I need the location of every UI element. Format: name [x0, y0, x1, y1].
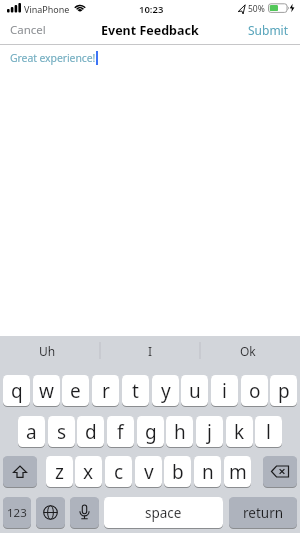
staticText: VinaPhone — [24, 3, 70, 15]
staticText: g — [145, 419, 157, 445]
button[interactable]: r — [92, 375, 119, 407]
button[interactable]: i — [211, 375, 238, 407]
staticText: z — [55, 459, 64, 485]
button[interactable]: Submit — [248, 22, 289, 38]
staticText: c — [114, 459, 124, 485]
button[interactable]: t — [122, 375, 149, 407]
staticText: k — [234, 419, 245, 445]
staticText: Great experience! — [10, 51, 96, 65]
staticText: Uh — [39, 343, 56, 359]
button[interactable]: 123 — [3, 497, 31, 529]
button[interactable]: m — [224, 456, 251, 488]
button[interactable]: f — [107, 416, 134, 448]
button[interactable]: p — [270, 375, 297, 407]
staticText: e — [70, 378, 81, 404]
staticText: Ok — [240, 343, 256, 359]
button[interactable]: g — [137, 416, 164, 448]
button[interactable]: Ok — [218, 342, 278, 360]
button[interactable]: k — [226, 416, 253, 448]
staticText: x — [83, 459, 94, 485]
staticText: q — [11, 378, 23, 404]
staticText: space — [145, 504, 182, 522]
button[interactable] — [263, 456, 297, 488]
button[interactable]: y — [152, 375, 179, 407]
staticText: 123 — [7, 505, 27, 521]
button[interactable]: o — [241, 375, 268, 407]
button[interactable]: Cancel — [10, 22, 46, 38]
staticText: f — [117, 419, 124, 445]
staticText: n — [202, 459, 214, 485]
staticText: t — [132, 378, 139, 404]
button[interactable]: l — [255, 416, 282, 448]
staticText: j — [207, 419, 212, 445]
staticText: b — [172, 459, 184, 485]
button[interactable]: v — [135, 456, 162, 488]
staticText: m — [229, 459, 247, 485]
staticText: return — [243, 504, 284, 522]
button[interactable]: d — [77, 416, 104, 448]
staticText: s — [57, 419, 67, 445]
staticText: h — [174, 419, 186, 445]
button[interactable]: I — [120, 342, 180, 360]
staticText: I — [148, 343, 153, 359]
button[interactable]: s — [48, 416, 75, 448]
button[interactable]: j — [196, 416, 223, 448]
button[interactable]: x — [75, 456, 102, 488]
button[interactable]: h — [166, 416, 193, 448]
staticText: Event Feedback — [101, 22, 199, 39]
staticText: y — [161, 378, 171, 404]
staticText: u — [189, 378, 201, 404]
button[interactable] — [70, 497, 99, 529]
staticText: d — [85, 419, 97, 445]
staticText: l — [266, 419, 271, 445]
button[interactable]: n — [194, 456, 221, 488]
staticText: a — [26, 419, 37, 445]
button[interactable]: c — [105, 456, 132, 488]
button[interactable] — [36, 497, 65, 529]
button[interactable]: b — [164, 456, 191, 488]
staticText: 10:23 — [139, 3, 164, 16]
button[interactable] — [3, 456, 37, 488]
staticText: p — [278, 378, 290, 404]
button[interactable]: z — [46, 456, 73, 488]
staticText: o — [249, 378, 261, 404]
staticText: r — [102, 378, 110, 404]
button[interactable]: u — [181, 375, 208, 407]
button[interactable]: Uh — [17, 342, 77, 360]
button[interactable]: return — [229, 497, 297, 529]
button[interactable]: q — [3, 375, 30, 407]
button[interactable]: a — [18, 416, 45, 448]
button[interactable]: w — [33, 375, 60, 407]
staticText: 50% — [248, 3, 265, 15]
staticText: w — [39, 378, 54, 404]
staticText: i — [222, 378, 227, 404]
button[interactable]: e — [62, 375, 89, 407]
staticText: v — [144, 459, 154, 485]
button[interactable]: space — [104, 497, 223, 529]
